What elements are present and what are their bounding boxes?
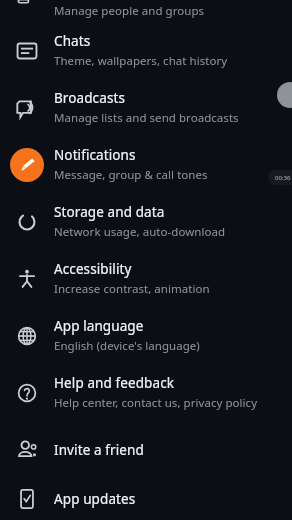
staticText: Theme, wallpapers, chat history [54, 53, 228, 69]
staticText: Invite a friend [54, 441, 144, 459]
staticText: Increase contrast, animation [54, 281, 210, 297]
button[interactable]: App language [0, 307, 292, 364]
staticText: Message, group & call tones [54, 167, 208, 183]
staticText: Manage lists and send broadcasts [54, 110, 239, 126]
staticText: Network usage, auto-download [54, 224, 226, 240]
button[interactable]: Accessibility [0, 250, 292, 307]
button[interactable]: Storage and data [0, 193, 292, 250]
button[interactable]: App updates [0, 478, 292, 520]
button[interactable]: Help and feedback [0, 364, 292, 421]
button[interactable]: Invite a friend [0, 421, 292, 478]
staticText: Storage and data [54, 203, 165, 221]
staticText: App updates [54, 490, 136, 508]
staticText: Chats [54, 32, 91, 50]
button[interactable]: Manage people and groups [0, 0, 292, 22]
staticText: Help and feedback [54, 374, 175, 392]
staticText: Notifications [54, 146, 136, 164]
staticText: Help center, contact us, privacy policy [54, 395, 258, 411]
staticText: Manage people and groups [54, 3, 205, 19]
staticText: 00:36 [275, 174, 291, 182]
button[interactable]: Notifications [0, 136, 292, 193]
button[interactable]: Chats [0, 22, 292, 79]
button[interactable]: Broadcasts [0, 79, 292, 136]
staticText: App language [54, 317, 144, 335]
staticText: Broadcasts [54, 89, 125, 107]
staticText: English (device's language) [54, 338, 200, 354]
staticText: Accessibility [54, 260, 132, 278]
